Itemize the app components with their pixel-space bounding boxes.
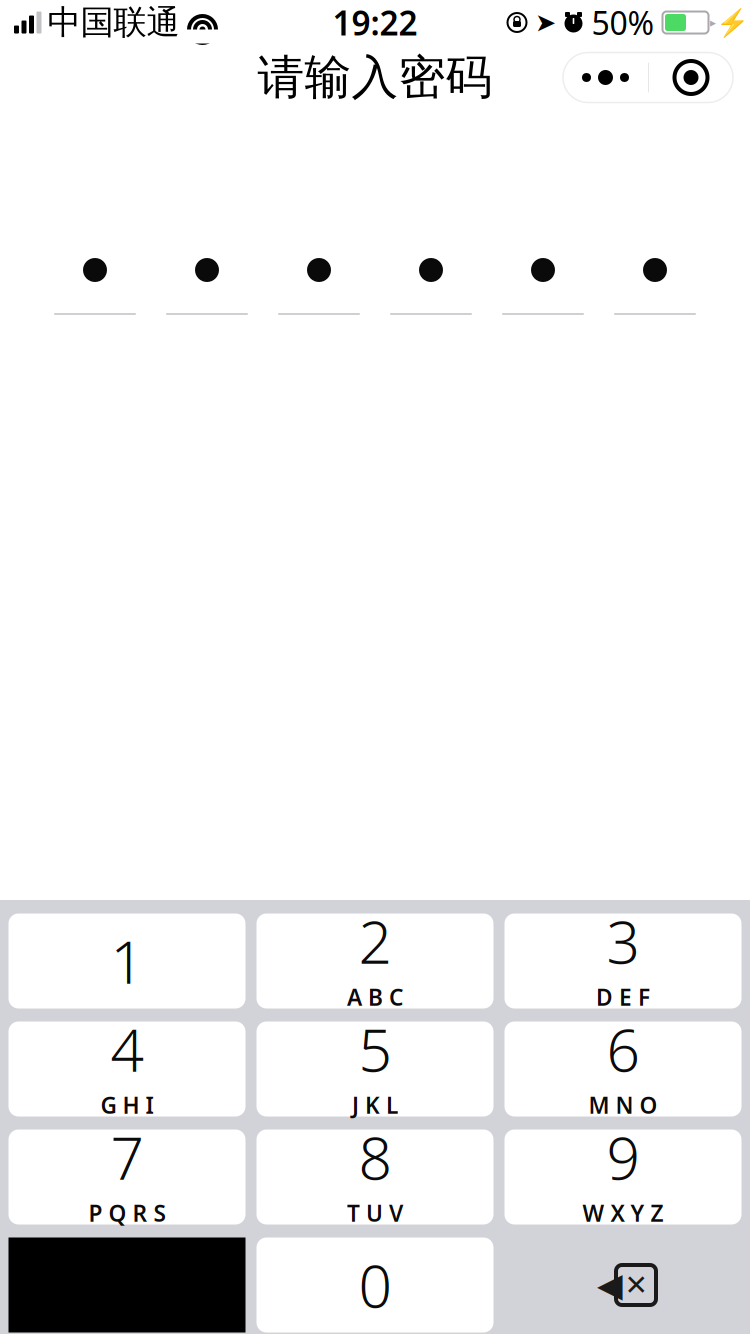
staticText: ◀ — [597, 1266, 623, 1304]
staticText: 1 — [110, 922, 143, 1000]
staticText: ➤ — [535, 8, 556, 37]
button[interactable]: 2 — [256, 913, 493, 1008]
staticText: 50% — [591, 1, 654, 44]
staticText: M N O — [588, 1090, 657, 1120]
staticText: P Q R S — [88, 1198, 165, 1228]
staticText: T U V — [347, 1198, 403, 1228]
staticText: 2 — [358, 902, 391, 980]
staticText: 19:22 — [332, 0, 417, 45]
staticText: 中国联通 — [47, 2, 179, 43]
staticText: W X Y Z — [582, 1198, 663, 1228]
staticText: 3 — [606, 902, 639, 980]
button[interactable]: 3 — [504, 913, 741, 1008]
staticText: A B C — [347, 982, 403, 1012]
button[interactable]: 9 — [504, 1129, 741, 1224]
button[interactable]: 4 — [8, 1021, 245, 1116]
staticText: ✕ — [624, 1269, 647, 1301]
button[interactable]: 1 — [8, 913, 245, 1008]
staticText: 7 — [110, 1118, 143, 1196]
staticText: J K L — [352, 1090, 398, 1120]
button[interactable]: 6 — [504, 1021, 741, 1116]
staticText: 8 — [358, 1118, 391, 1196]
button[interactable]: 8 — [256, 1129, 493, 1224]
staticText: 4 — [110, 1010, 143, 1088]
staticText: 5 — [358, 1010, 391, 1088]
button[interactable]: 7 — [8, 1129, 245, 1224]
staticText: D E F — [596, 982, 650, 1012]
staticText: G H I — [100, 1090, 153, 1120]
button[interactable]: 5 — [256, 1021, 493, 1116]
button[interactable]: 0 — [256, 1237, 493, 1332]
staticText: ▸ — [710, 16, 716, 29]
staticText: ⚡ — [715, 7, 748, 38]
staticText: 请输入密码 — [257, 49, 492, 106]
staticText: 9 — [606, 1118, 639, 1196]
staticText: 6 — [606, 1010, 639, 1088]
button[interactable]: Close — [649, 52, 733, 102]
staticText: 0 — [358, 1246, 391, 1324]
button[interactable]: Delete — [504, 1237, 741, 1332]
button[interactable]: More — [563, 52, 648, 102]
